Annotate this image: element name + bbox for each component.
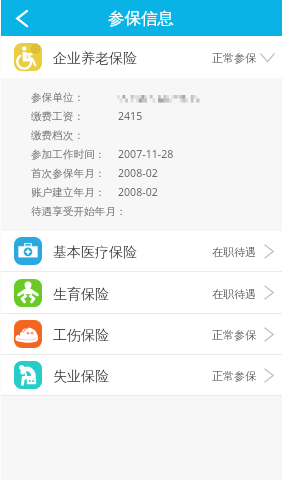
- button[interactable]: 基本医疗保险: [0, 231, 282, 271]
- staticText: 参保信息: [108, 8, 174, 29]
- staticText: 工伤保险: [53, 327, 109, 345]
- staticText: 2008-02: [118, 185, 158, 199]
- staticText: 正常参保: [212, 369, 256, 383]
- staticText: 缴费档次：: [31, 129, 84, 142]
- staticText: 生育保险: [53, 286, 109, 304]
- staticText: 正常参保: [212, 328, 256, 342]
- staticText: 账户建立年月：: [31, 186, 106, 199]
- staticText: 企业养老保险: [53, 50, 137, 68]
- staticText: 2415: [118, 109, 143, 123]
- staticText: 正常参保: [212, 51, 256, 65]
- staticText: 参加工作时间：: [31, 148, 106, 161]
- staticText: 首次参保年月：: [31, 167, 106, 180]
- staticText: 在职待遇: [212, 245, 256, 259]
- staticText: 在职待遇: [212, 287, 256, 301]
- staticText: 缴费工资：: [31, 110, 84, 123]
- staticText: 参保单位：: [31, 91, 84, 104]
- button[interactable]: 失业保险: [0, 355, 282, 395]
- staticText: 基本医疗保险: [53, 244, 137, 262]
- button[interactable]: Back: [0, 0, 44, 36]
- staticText: 2007-11-28: [118, 147, 174, 161]
- button[interactable]: 工伤保险: [0, 314, 282, 354]
- button[interactable]: 生育保险: [0, 272, 282, 313]
- staticText: 待遇享受开始年月：: [31, 205, 127, 218]
- staticText: 2008-02: [118, 166, 158, 180]
- staticText: 失业保险: [53, 368, 109, 386]
- button[interactable]: 企业养老保险: [0, 36, 282, 78]
